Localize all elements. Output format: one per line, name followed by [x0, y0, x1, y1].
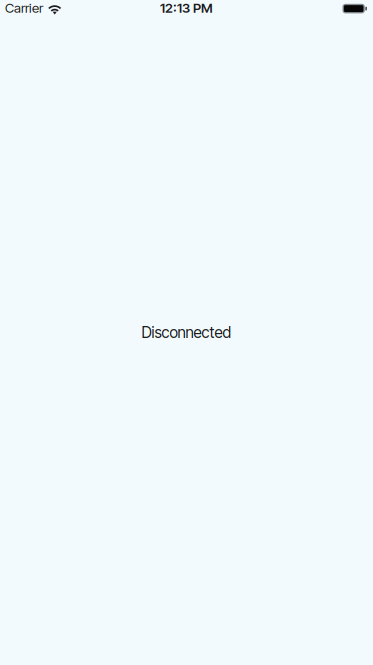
staticText: Disconnected [141, 323, 231, 342]
staticText: 12:13 PM [160, 0, 213, 16]
staticText: Carrier [5, 0, 43, 16]
